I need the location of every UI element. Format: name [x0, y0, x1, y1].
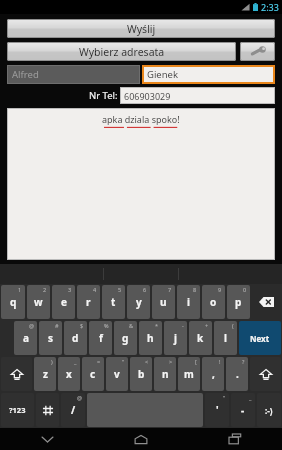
staticText: apka dziala spoko!	[102, 113, 180, 125]
staticText: /	[71, 403, 76, 417]
staticText: j	[174, 331, 177, 345]
staticText: ,	[212, 367, 215, 381]
button[interactable]: Hide keyboard	[0, 428, 94, 450]
button[interactable]: <	[130, 357, 152, 391]
button[interactable]: Home	[94, 428, 188, 450]
staticText: n	[162, 367, 169, 381]
button[interactable]: Wyślij	[7, 19, 275, 38]
staticText: "	[223, 394, 226, 401]
staticText: )	[51, 358, 53, 365]
button[interactable]: _	[231, 393, 255, 427]
button[interactable]: Settings	[240, 42, 275, 61]
button[interactable]: Language	[36, 393, 59, 427]
staticText: s	[48, 331, 54, 345]
staticText: [	[195, 358, 197, 365]
button[interactable]: Shift	[250, 357, 281, 391]
staticText: +	[205, 322, 209, 329]
staticText: l	[224, 331, 227, 345]
staticText: ?123	[9, 405, 26, 415]
staticText: @	[29, 322, 34, 329]
staticText: i	[187, 295, 190, 309]
button[interactable]: -	[164, 321, 187, 355]
button[interactable]: ?	[226, 357, 248, 391]
staticText: %	[104, 322, 109, 329]
staticText: >	[169, 358, 173, 365]
button[interactable]: ?123	[1, 393, 34, 427]
button[interactable]: Next	[239, 321, 281, 355]
staticText: *	[155, 322, 159, 329]
button[interactable]: 4	[77, 285, 100, 319]
staticText: w	[34, 295, 43, 309]
button[interactable]: Gienek	[142, 65, 275, 84]
button[interactable]: Shift	[1, 357, 32, 391]
button[interactable]: =	[82, 357, 104, 391]
staticText: "	[122, 358, 125, 365]
button[interactable]: +	[189, 321, 212, 355]
button[interactable]: !	[202, 357, 224, 391]
button[interactable]: &	[114, 321, 137, 355]
staticText: p	[235, 295, 242, 309]
staticText: g	[122, 331, 129, 345]
button[interactable]: Emoticon	[257, 393, 281, 427]
button[interactable]: 6	[127, 285, 150, 319]
button[interactable]: Recent apps	[188, 428, 282, 450]
button[interactable]: 9	[202, 285, 225, 319]
staticText: Nr Tel:	[89, 89, 118, 102]
button[interactable]: #	[39, 321, 62, 355]
staticText: r	[86, 295, 91, 309]
staticText: z	[43, 367, 48, 381]
button[interactable]: apka dziala spoko!	[7, 108, 275, 260]
button[interactable]: 1	[1, 285, 25, 319]
staticText: a	[23, 331, 29, 345]
staticText: =	[97, 358, 101, 365]
button[interactable]: 0	[227, 285, 250, 319]
button[interactable]: 5	[102, 285, 125, 319]
button[interactable]: Wybierz adresata	[7, 42, 236, 61]
staticText: x	[66, 367, 72, 381]
staticText: ?	[242, 358, 245, 365]
button[interactable]: %	[89, 321, 112, 355]
staticText: 6	[143, 286, 147, 293]
button[interactable]: 2	[27, 285, 50, 319]
button[interactable]: 3	[52, 285, 75, 319]
button[interactable]: $	[64, 321, 87, 355]
button[interactable]: 8	[177, 285, 200, 319]
staticText: o	[210, 295, 217, 309]
button[interactable]: @	[14, 321, 37, 355]
button[interactable]: @	[61, 393, 85, 427]
button[interactable]: >	[154, 357, 176, 391]
staticText: t	[111, 295, 116, 309]
staticText: (	[232, 322, 234, 329]
button[interactable]: 606903029	[120, 87, 275, 104]
staticText: f	[99, 331, 103, 345]
button[interactable]: _	[58, 357, 80, 391]
staticText: 1	[18, 286, 22, 293]
staticText: -	[241, 403, 245, 417]
button[interactable]: *	[139, 321, 162, 355]
button[interactable]: [	[178, 357, 200, 391]
staticText: 5	[118, 286, 122, 293]
button[interactable]: 7	[152, 285, 175, 319]
staticText: :-)	[265, 405, 273, 416]
button[interactable]: "	[205, 393, 229, 427]
staticText: @	[77, 394, 82, 401]
staticText: c	[90, 367, 96, 381]
staticText: b	[138, 367, 145, 381]
staticText: Wyślij	[127, 22, 156, 36]
staticText: Gienek	[147, 68, 179, 81]
button[interactable]: "	[106, 357, 128, 391]
button[interactable]: )	[34, 357, 56, 391]
staticText: 7	[168, 286, 172, 293]
button[interactable]: Backspace	[252, 285, 281, 319]
button[interactable]: Alfred	[7, 65, 140, 84]
button[interactable]: (	[214, 321, 237, 355]
staticText: $	[80, 322, 84, 329]
staticText: _	[74, 358, 77, 365]
staticText: u	[160, 295, 167, 309]
staticText: &	[129, 322, 134, 329]
staticText: '	[216, 403, 219, 417]
